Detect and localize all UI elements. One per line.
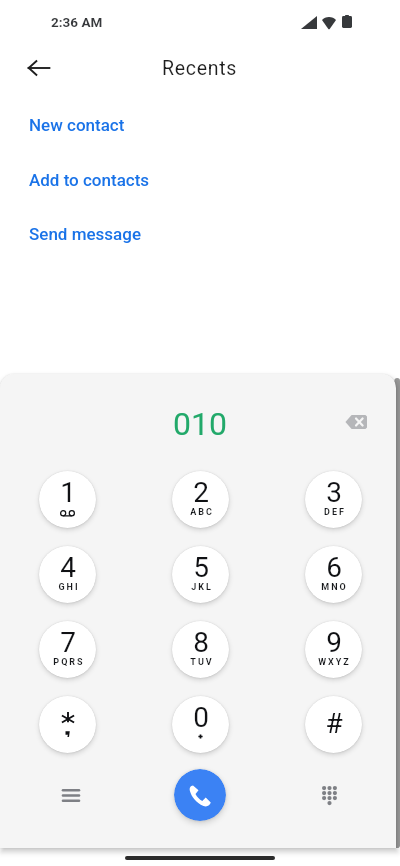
staticText: 6 [326,551,342,584]
button[interactable]: 8 [172,621,229,678]
button[interactable]: 0 [172,696,229,753]
button[interactable]: 5 [172,546,229,603]
button[interactable]: # [305,696,362,753]
staticText: New contact [29,115,125,135]
staticText: DEF [324,507,346,518]
staticText: Recents [162,57,238,80]
staticText: 9 [326,626,342,659]
staticText: 8 [193,626,209,659]
button[interactable]: Dialpad [305,771,353,819]
button[interactable]: Call [174,769,226,821]
staticText: GHI [58,582,80,593]
staticText: WXYZ [318,657,351,668]
button[interactable]: Send message [0,210,400,258]
staticText: JKL [191,582,213,593]
button[interactable]: New contact [0,101,400,149]
staticText: 4 [60,551,76,584]
staticText: 2 [193,476,209,509]
staticText: 3 [326,476,342,509]
staticText: PQRS [53,657,85,668]
button[interactable]: Backspace [338,404,374,440]
staticText: 010 [173,405,227,443]
staticText: 7 [60,626,76,659]
button[interactable] [39,696,96,753]
button[interactable]: 1 [39,471,96,528]
staticText: 2:36 AM [51,14,103,30]
button[interactable]: 7 [39,621,96,678]
button[interactable]: Add to contacts [0,156,400,204]
staticText: TUV [190,657,214,668]
staticText: Add to contacts [29,170,150,190]
staticText: Send message [29,224,141,244]
staticText: MNO [321,582,348,593]
staticText: 0 [193,701,209,734]
button[interactable]: Back [18,47,60,89]
button[interactable]: 4 [39,546,96,603]
button[interactable]: 2 [172,471,229,528]
staticText: ABC [190,507,214,518]
button[interactable]: 9 [305,621,362,678]
button[interactable]: 3 [305,471,362,528]
button[interactable]: 6 [305,546,362,603]
staticText: 1 [60,476,76,509]
button[interactable]: Menu [47,771,95,819]
staticText: # [325,707,343,740]
staticText: 5 [193,551,209,584]
